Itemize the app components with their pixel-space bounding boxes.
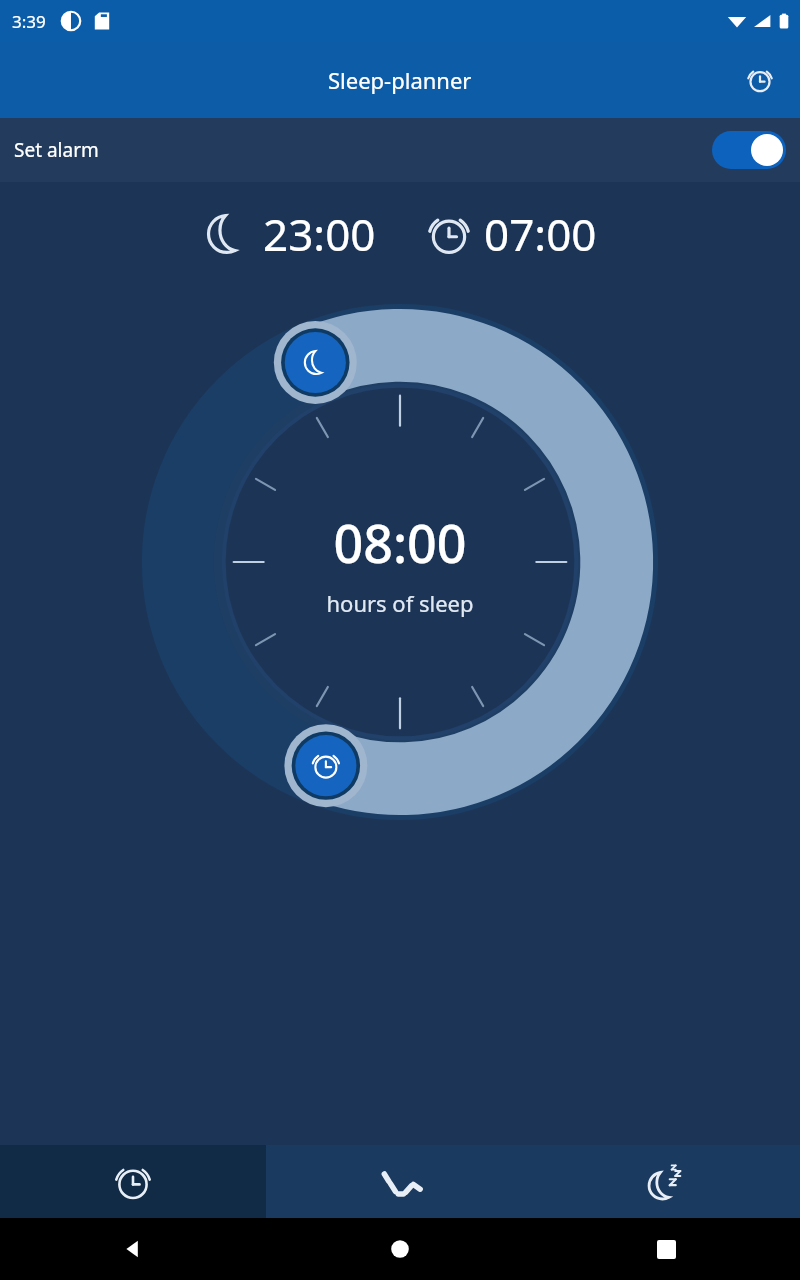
other: Home [390, 1239, 410, 1259]
button[interactable]: 07:00 [426, 204, 597, 264]
button[interactable]: Sleep graph tab [266, 1145, 533, 1218]
button[interactable]: 23:00 [203, 204, 376, 264]
staticText: 07:00 [484, 204, 597, 264]
other: Back [122, 1238, 144, 1260]
staticText: 08:00 [333, 507, 467, 578]
button[interactable]: Bedtime tab [533, 1145, 800, 1218]
staticText: 3:39 [12, 10, 46, 33]
staticText: 23:00 [263, 204, 376, 264]
button[interactable]: Alarm [738, 58, 782, 102]
button[interactable]: Alarm tab [0, 1145, 266, 1218]
other: Recents [657, 1240, 676, 1259]
staticText: Sleep-planner [328, 65, 472, 95]
button[interactable]: Set alarm toggle [712, 131, 786, 169]
button[interactable]: Sleep duration dial [120, 282, 680, 842]
staticText: Set alarm [14, 137, 99, 163]
button[interactable]: Set alarm [0, 118, 800, 182]
staticText: hours of sleep [326, 588, 474, 618]
